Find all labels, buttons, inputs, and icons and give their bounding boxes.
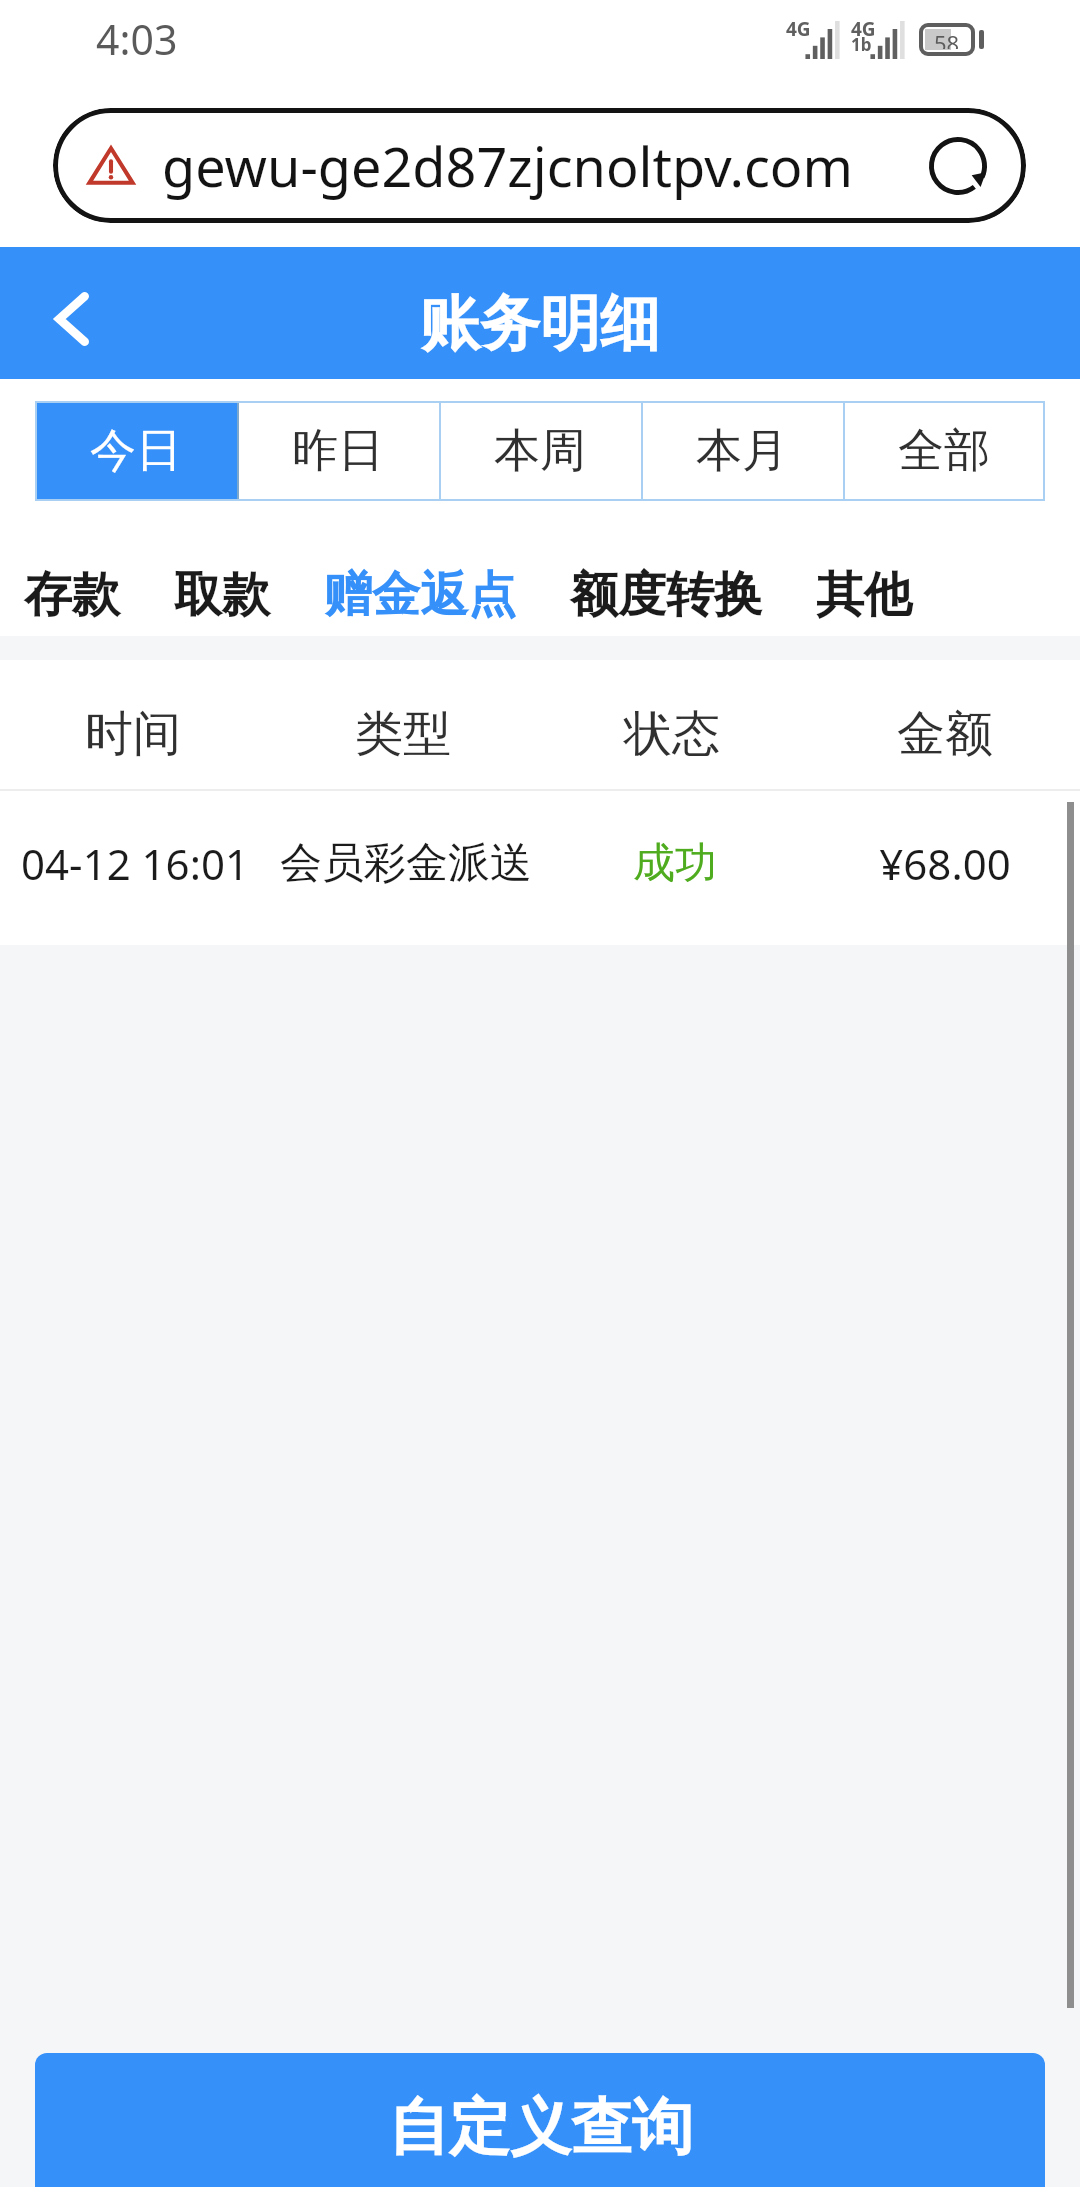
staticText: 会员彩金派送 xyxy=(280,837,532,890)
staticText: gewu-ge2d87zjcnoltpv.com xyxy=(162,129,853,203)
staticText: 存款 xyxy=(24,565,120,625)
staticText: 成功 xyxy=(633,837,717,890)
staticText: 金额 xyxy=(897,704,993,764)
staticText: 类型 xyxy=(355,704,451,764)
button[interactable]: 赠金返点 xyxy=(324,549,516,641)
button[interactable]: 全部 xyxy=(843,401,1045,501)
staticText: ¥68.00 xyxy=(879,835,1011,892)
staticText: 额度转换 xyxy=(570,565,762,625)
staticText: 04-12 16:01 xyxy=(21,835,249,892)
staticText: 58 xyxy=(934,28,960,49)
staticText: 赠金返点 xyxy=(324,565,516,625)
staticText: 时间 xyxy=(85,704,181,764)
staticText: 取款 xyxy=(174,565,270,625)
staticText: 状态 xyxy=(624,704,720,764)
button[interactable]: 本周 xyxy=(439,401,641,501)
button[interactable]: 自定义查询 xyxy=(35,2053,1045,2187)
staticText: 4:03 xyxy=(96,11,178,67)
button[interactable]: 其他 xyxy=(816,549,912,641)
staticText: 全部 xyxy=(898,422,990,480)
button[interactable]: 额度转换 xyxy=(570,549,762,641)
staticText: 今日 xyxy=(90,422,182,480)
staticText: 昨日 xyxy=(292,422,384,480)
staticText: 其他 xyxy=(816,565,912,625)
button[interactable]: 今日 xyxy=(35,401,237,501)
button[interactable]: 取款 xyxy=(174,549,270,641)
staticText: 4G xyxy=(851,16,876,42)
button[interactable]: 存款 xyxy=(24,549,120,641)
button[interactable]: 昨日 xyxy=(237,401,439,501)
button[interactable]: 本月 xyxy=(641,401,843,501)
staticText: 账务明细 xyxy=(420,286,660,362)
staticText: 4G xyxy=(786,16,811,42)
button[interactable]: Back xyxy=(26,273,118,365)
staticText: 本周 xyxy=(494,422,586,480)
button[interactable]: 04-12 16:01 xyxy=(0,791,1080,935)
staticText: 本月 xyxy=(696,422,788,480)
button[interactable]: Reload page xyxy=(929,137,987,195)
staticText: 1b xyxy=(851,33,872,56)
staticText: 自定义查询 xyxy=(388,2089,693,2166)
button[interactable]: gewu-ge2d87zjcnoltpv.com xyxy=(53,108,1026,223)
